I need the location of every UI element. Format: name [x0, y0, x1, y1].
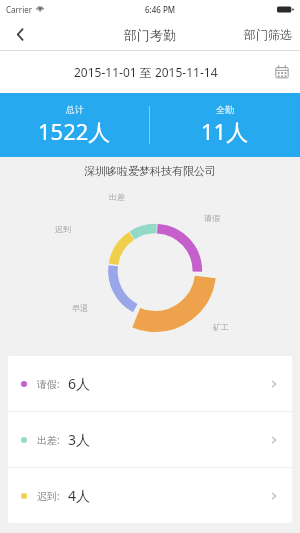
staticText: 全勤 — [216, 104, 234, 115]
staticText: 6:46 PM — [145, 4, 176, 15]
staticText: 2015-11-01 至 2015-11-14 — [74, 64, 218, 80]
staticText: 请假: — [37, 377, 60, 391]
staticText: 4人 — [68, 486, 91, 505]
button[interactable]: 2015-11-01 至 2015-11-14 — [0, 51, 300, 93]
staticText: Carrier — [6, 4, 33, 15]
staticText: 3人 — [68, 430, 91, 449]
button[interactable]: 出差: — [8, 412, 292, 468]
staticText: 迟到 — [55, 224, 71, 234]
staticText: 出差 — [109, 192, 125, 202]
staticText: 部门筛选 — [244, 27, 292, 42]
button[interactable]: 总计 — [0, 93, 149, 157]
button[interactable]: 请假: — [8, 356, 292, 412]
staticText: 1522人 — [38, 116, 111, 146]
staticText: 矿工 — [213, 322, 229, 332]
button[interactable]: 部门筛选 — [236, 18, 300, 51]
button[interactable]: Pick date range — [272, 62, 292, 82]
staticText: 请假 — [204, 213, 220, 223]
staticText: 出差: — [37, 433, 60, 447]
staticText: 早退 — [72, 303, 88, 313]
staticText: 6人 — [68, 374, 91, 393]
staticText: 深圳哆啦爱梦科技有限公司 — [84, 164, 216, 178]
button[interactable]: 全勤 — [150, 93, 300, 157]
staticText: 11人 — [201, 116, 249, 146]
button[interactable]: Back — [0, 18, 40, 51]
button[interactable]: 迟到: — [8, 468, 292, 523]
staticText: 部门考勤 — [124, 27, 176, 43]
staticText: 迟到: — [37, 489, 60, 503]
staticText: 总计 — [66, 104, 84, 115]
